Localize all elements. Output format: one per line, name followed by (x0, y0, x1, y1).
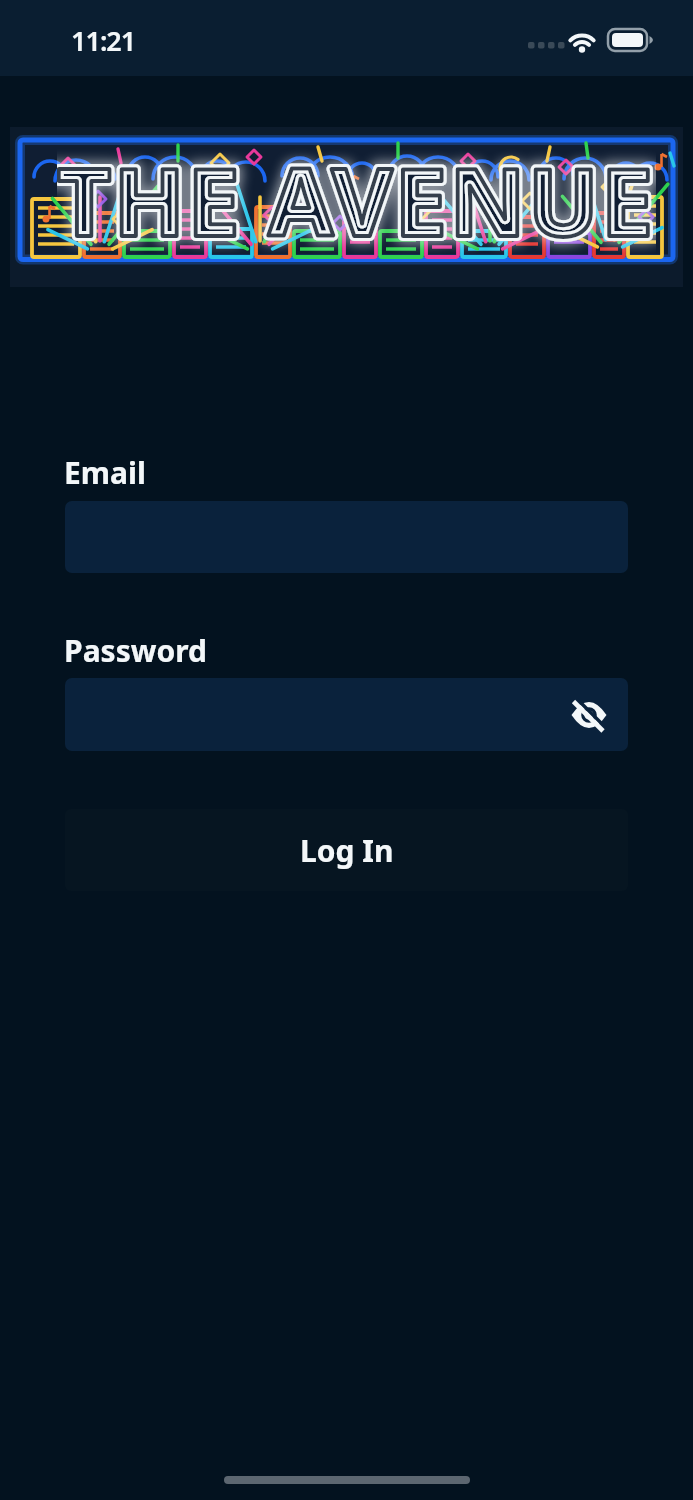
staticText: Email (64, 452, 146, 493)
button[interactable]: Log In (65, 809, 628, 891)
staticText: THE AVENUE (57, 136, 656, 256)
staticText: 11:21 (71, 22, 136, 59)
button[interactable] (65, 678, 628, 751)
staticText: THE AVENUE (57, 136, 656, 256)
staticText: THE AVENUE (57, 136, 656, 256)
staticText: THE AVENUE (57, 136, 656, 256)
staticText: Log In (300, 830, 394, 871)
staticText: Password (64, 630, 207, 671)
